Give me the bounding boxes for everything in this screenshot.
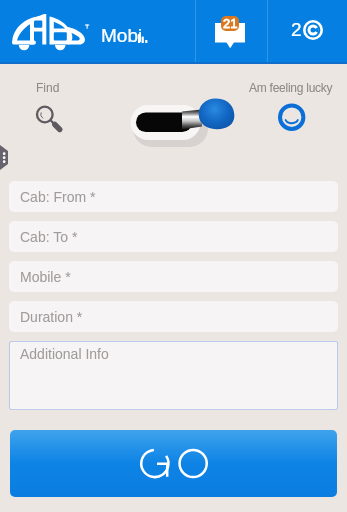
staticText: Additional Info — [20, 346, 109, 362]
button[interactable]: Am feeling lucky — [249, 76, 335, 132]
staticText: Am feeling lucky — [249, 81, 333, 94]
staticText: Mobi — [101, 25, 143, 46]
button[interactable]: Cab: To * — [9, 221, 338, 252]
staticText: Duration * — [20, 309, 83, 325]
button[interactable]: Toggle — [128, 93, 240, 151]
button[interactable]: Cab: From * — [9, 181, 338, 212]
button[interactable]: Additional Info — [9, 341, 338, 410]
button[interactable] — [10, 430, 337, 497]
button[interactable]: 2C — [268, 0, 347, 62]
button[interactable]: Messages — [196, 0, 267, 62]
staticText: Cab: To * — [20, 229, 78, 245]
staticText: Find — [36, 81, 60, 94]
staticText: 21 — [223, 16, 238, 31]
staticText: Cab: From * — [20, 189, 96, 205]
staticText: Mobile * — [20, 269, 71, 285]
button[interactable]: Mobile * — [9, 261, 338, 292]
button[interactable]: Duration * — [9, 301, 338, 332]
staticText: 2 — [291, 19, 302, 40]
button[interactable]: Find — [30, 76, 68, 132]
button[interactable]: Mobi — [0, 0, 195, 62]
button[interactable]: Open menu — [0, 145, 8, 170]
